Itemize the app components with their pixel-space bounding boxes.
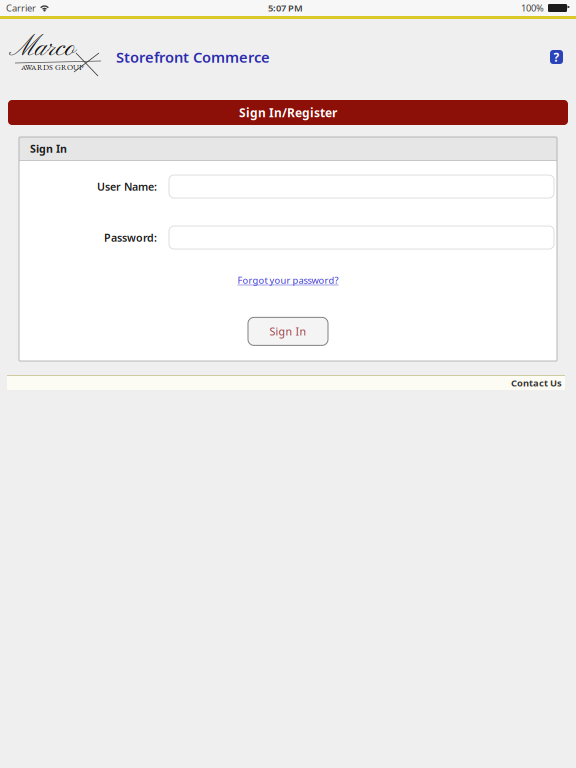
staticText: Forgot your password? <box>237 274 338 286</box>
staticText: Marco <box>9 31 75 66</box>
staticText: Sign In <box>30 141 67 156</box>
staticText: AWARDS GROUP <box>21 62 83 72</box>
button[interactable]: Help <box>543 43 570 71</box>
button[interactable]: Sign In/Register <box>0 100 576 125</box>
staticText: Sign In/Register <box>239 104 337 120</box>
staticText: 5:07 PM <box>268 2 303 14</box>
staticText: Storefront Commerce <box>116 47 270 67</box>
button[interactable]: Forgot your password? <box>234 272 341 288</box>
staticText: User Name: <box>97 179 157 194</box>
staticText: Password: <box>104 230 157 245</box>
button[interactable]: Sign In <box>248 317 328 345</box>
staticText: 100% <box>521 2 544 14</box>
staticText: ? <box>553 49 559 65</box>
staticText: Contact Us <box>511 377 562 389</box>
staticText: Carrier <box>6 2 36 14</box>
button[interactable]: Contact Us <box>511 375 565 391</box>
staticText: Sign In <box>269 324 306 338</box>
